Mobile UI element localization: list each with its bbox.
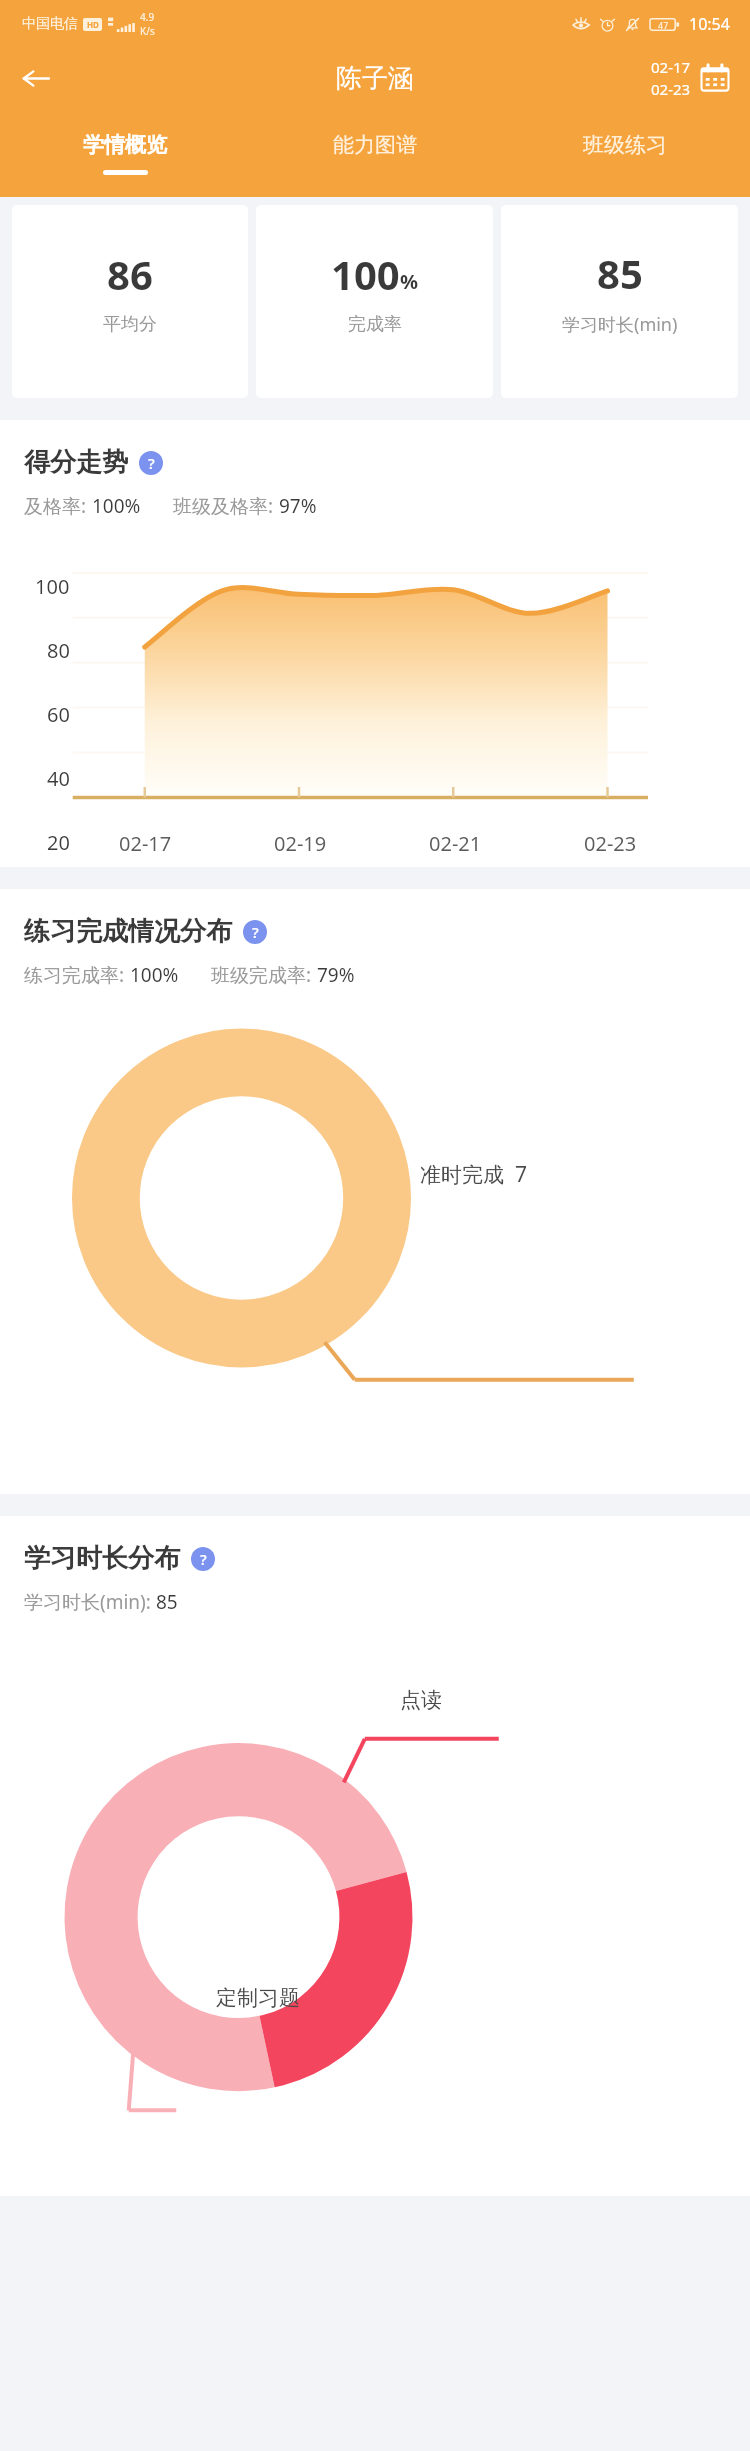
staticText: 学习时长(min) — [562, 312, 678, 337]
staticText: 47 — [658, 19, 669, 31]
staticText: K/s — [140, 24, 155, 38]
staticText: 97% — [279, 493, 317, 519]
staticText: 定制习题 — [216, 1985, 300, 2011]
staticText: 40 — [47, 765, 70, 792]
button[interactable]: Help — [139, 451, 163, 475]
button[interactable]: 班级练习 — [500, 109, 750, 197]
staticText: 20 — [47, 829, 70, 856]
staticText: 100% — [92, 493, 141, 519]
staticText: ? — [148, 453, 155, 473]
staticText: HD — [87, 19, 99, 30]
staticText: 点读 — [400, 1687, 442, 1713]
staticText: 中国电信 — [22, 15, 78, 33]
staticText: 班级完成率: — [211, 962, 317, 988]
staticText: 完成率 — [348, 313, 402, 336]
staticText: ? — [200, 1549, 207, 1569]
button[interactable]: 100 — [256, 205, 493, 398]
staticText: ? — [252, 922, 259, 942]
staticText: 学习时长(min): — [24, 1589, 156, 1615]
staticText: 85 — [597, 246, 643, 300]
staticText: 85 — [156, 1589, 178, 1615]
staticText: 班级练习 — [583, 132, 667, 158]
button[interactable]: 85 — [501, 205, 738, 398]
staticText: 100% — [130, 962, 179, 988]
staticText: 班级及格率: — [173, 493, 279, 519]
button[interactable]: Help — [191, 1547, 215, 1571]
staticText: 4.9 — [140, 10, 155, 24]
staticText: 02-21 — [429, 830, 482, 857]
button[interactable]: Help — [243, 920, 267, 944]
staticText: 79% — [317, 962, 355, 988]
staticText: 02-17 — [651, 57, 691, 77]
staticText: % — [400, 268, 419, 295]
button[interactable]: 86 — [12, 205, 248, 398]
staticText: 02-17 — [119, 830, 172, 857]
other: Select date range — [700, 63, 730, 93]
staticText: 及格率: — [24, 493, 92, 519]
button[interactable]: 02-17 — [647, 53, 734, 103]
staticText: 能力图谱 — [333, 132, 417, 158]
staticText: 陈子涵 — [336, 62, 414, 95]
staticText: 学习时长分布 — [24, 1542, 180, 1575]
staticText: 100 — [35, 573, 70, 600]
staticText: 02-23 — [584, 830, 637, 857]
staticText: 02-23 — [651, 79, 691, 99]
staticText: 得分走势 — [24, 446, 128, 479]
staticText: 平均分 — [103, 313, 157, 336]
staticText: 练习完成率: — [24, 962, 130, 988]
staticText: 学情概览 — [83, 132, 167, 158]
staticText: 100 — [331, 247, 400, 301]
staticText: 练习完成情况分布 — [24, 915, 232, 948]
staticText: 10:54 — [689, 13, 730, 35]
staticText: 80 — [47, 637, 70, 664]
staticText: 02-19 — [274, 830, 327, 857]
staticText: 60 — [47, 701, 70, 728]
button[interactable]: Back — [10, 52, 62, 104]
staticText: 86 — [107, 247, 153, 301]
button[interactable]: 学情概览 — [0, 109, 250, 197]
staticText: 准时完成 7 — [420, 1160, 527, 1189]
button[interactable]: 能力图谱 — [250, 109, 500, 197]
